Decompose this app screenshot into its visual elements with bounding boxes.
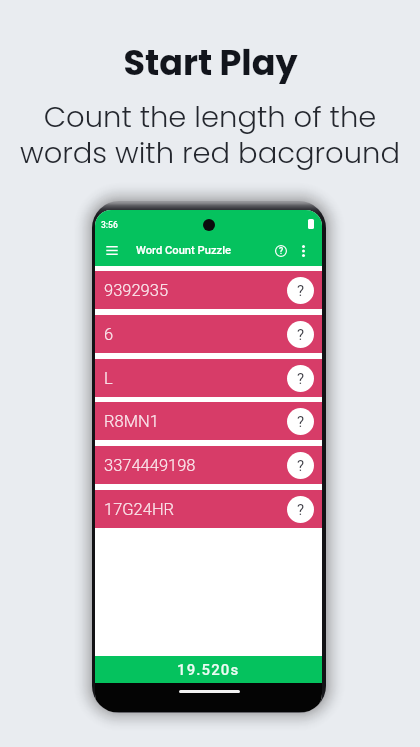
button[interactable]: 3374449198 (95, 446, 322, 484)
staticText: ? (297, 457, 305, 475)
button[interactable]: Open navigation menu (102, 241, 121, 260)
button[interactable]: 9392935 (95, 271, 322, 309)
button[interactable]: 17G24HR (95, 490, 322, 528)
button[interactable]: Hint for R8MN1 (287, 408, 314, 435)
button[interactable]: R8MN1 (95, 402, 322, 440)
staticText: ? (297, 326, 305, 344)
staticText: Count the length of the words with red b… (20, 97, 400, 174)
button[interactable]: 6 (95, 315, 322, 353)
staticText: ? (297, 282, 305, 300)
staticText: 6 (104, 325, 114, 344)
staticText: Word Count Puzzle (136, 244, 232, 257)
button[interactable]: Hint for 17G24HR (287, 496, 314, 523)
button[interactable]: L (95, 359, 322, 397)
staticText: ? (297, 501, 305, 519)
staticText: R8MN1 (104, 412, 159, 431)
button[interactable]: Help (271, 241, 291, 261)
button[interactable]: More options (293, 241, 313, 261)
staticText: ? (279, 246, 284, 256)
button[interactable]: Hint for 6 (287, 321, 314, 348)
button[interactable]: Hint for 9392935 (287, 277, 314, 304)
staticText: L (104, 369, 113, 388)
staticText: 3374449198 (104, 456, 196, 475)
button[interactable]: Hint for L (287, 365, 314, 392)
staticText: 9392935 (104, 281, 169, 300)
staticText: 3:56 (101, 220, 118, 230)
button[interactable]: Hint for 3374449198 (287, 452, 314, 479)
staticText: ? (297, 370, 305, 388)
staticText: 19.520s (177, 661, 240, 679)
staticText: Start Play (123, 38, 298, 87)
staticText: 17G24HR (104, 500, 175, 519)
staticText: ? (297, 413, 305, 431)
